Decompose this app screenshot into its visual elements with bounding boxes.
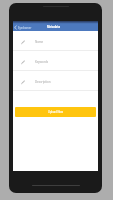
staticText: Keywords	[35, 60, 49, 64]
button[interactable]: Edit Keywords	[13, 51, 98, 71]
button[interactable]: Back	[14, 25, 32, 30]
staticText: Metadata	[47, 25, 60, 29]
staticText: Eyecleaner	[18, 26, 32, 30]
other: Edit Name	[21, 40, 25, 44]
button[interactable]: Upload Now	[15, 107, 96, 117]
other: Back	[14, 25, 17, 30]
staticText: Name	[35, 40, 44, 44]
other: Edit Description	[21, 80, 25, 84]
button[interactable]: Edit Name	[13, 31, 98, 51]
staticText: Description	[35, 80, 51, 84]
other: Edit Keywords	[21, 60, 25, 64]
button[interactable]: Edit Description	[13, 71, 98, 91]
staticText: Upload Now	[48, 110, 63, 114]
